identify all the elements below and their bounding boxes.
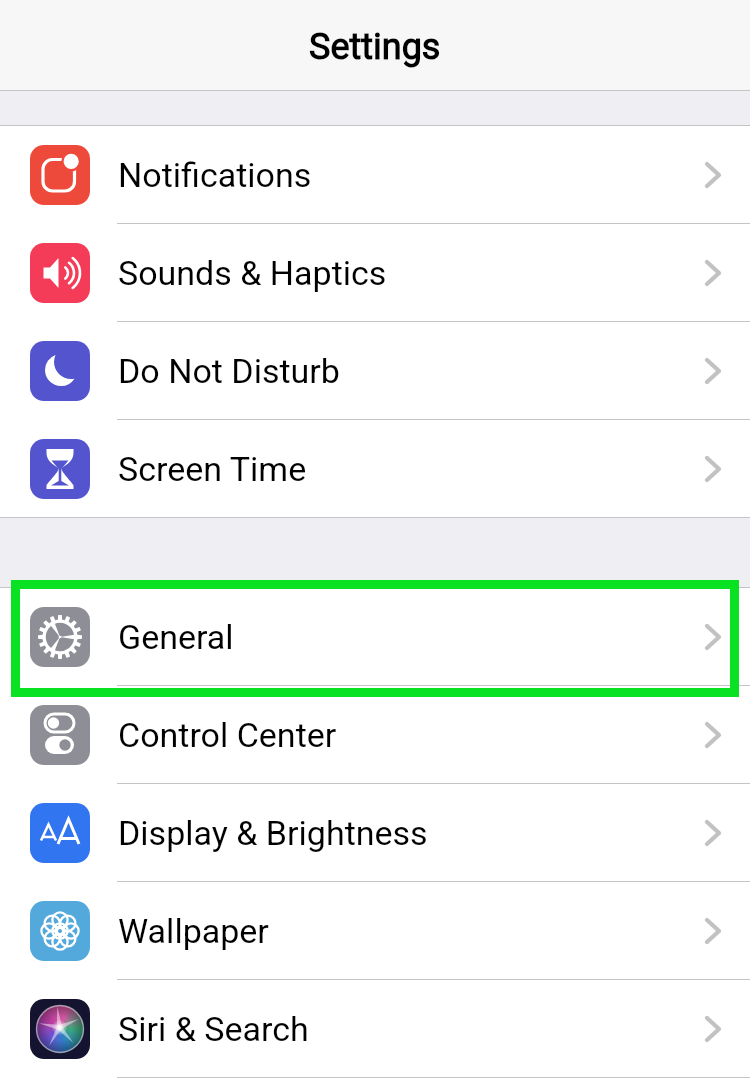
button[interactable]: Sounds & Haptics bbox=[0, 224, 750, 321]
staticText: Wallpaper bbox=[118, 911, 269, 951]
button[interactable]: General bbox=[0, 588, 750, 685]
staticText: Screen Time bbox=[118, 449, 307, 489]
button[interactable]: Notifications bbox=[0, 126, 750, 223]
button[interactable]: Display & Brightness bbox=[0, 784, 750, 881]
staticText: Siri & Search bbox=[118, 1009, 309, 1049]
button[interactable]: Siri & Search bbox=[0, 980, 750, 1077]
button[interactable]: Wallpaper bbox=[0, 882, 750, 979]
button[interactable]: Control Center bbox=[0, 686, 750, 783]
staticText: Control Center bbox=[118, 715, 337, 755]
staticText: General bbox=[118, 617, 234, 657]
button[interactable]: Screen Time bbox=[0, 420, 750, 517]
button[interactable]: Do Not Disturb bbox=[0, 322, 750, 419]
staticText: Notifications bbox=[118, 155, 312, 195]
staticText: Sounds & Haptics bbox=[118, 253, 387, 293]
staticText: Do Not Disturb bbox=[118, 351, 340, 391]
staticText: Settings bbox=[309, 26, 441, 68]
staticText: Display & Brightness bbox=[118, 813, 428, 853]
